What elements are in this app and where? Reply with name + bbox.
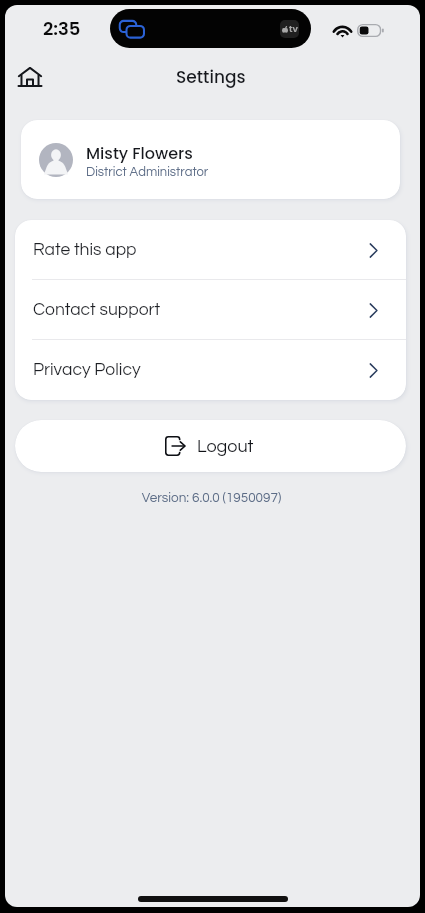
button[interactable]: Misty Flowers xyxy=(21,120,400,199)
button[interactable]: Home xyxy=(13,60,47,94)
button[interactable]: Rate this app xyxy=(15,220,406,280)
staticText: Logout xyxy=(197,437,254,456)
staticText: Contact support xyxy=(33,301,161,319)
staticText: Privacy Policy xyxy=(33,361,141,379)
staticText: Settings xyxy=(176,65,246,89)
staticText: Rate this app xyxy=(33,241,137,259)
staticText: 2:35 xyxy=(43,16,81,41)
button[interactable]: Contact support xyxy=(15,280,406,340)
staticText: Misty Flowers xyxy=(86,142,193,164)
staticText: Version: 6.0.0 (1950097) xyxy=(5,491,419,505)
button[interactable]: Privacy Policy xyxy=(15,340,406,400)
staticText: District Administrator xyxy=(86,165,209,178)
button[interactable]: Logout xyxy=(15,420,406,472)
staticText: tv xyxy=(289,23,298,36)
